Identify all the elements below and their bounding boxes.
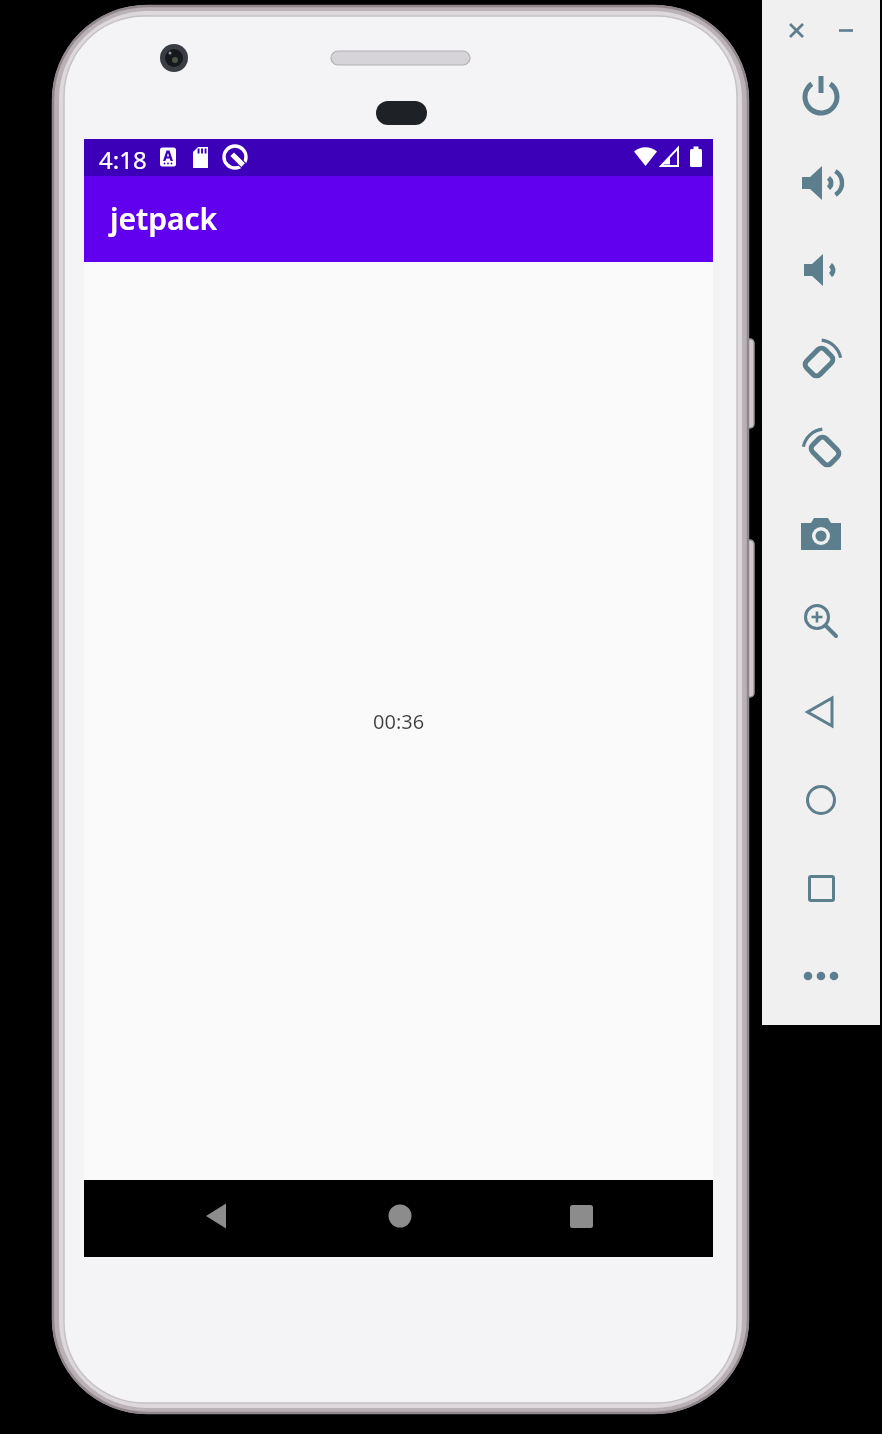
button[interactable] [799, 778, 843, 822]
staticText: jetpack [110, 198, 218, 239]
button[interactable] [799, 161, 843, 205]
button[interactable] [555, 1190, 607, 1242]
button[interactable] [799, 954, 843, 998]
button[interactable] [799, 512, 843, 556]
staticText: 00:36 [373, 708, 425, 735]
button[interactable] [190, 1190, 242, 1242]
button[interactable] [799, 866, 843, 910]
button[interactable] [799, 599, 843, 643]
button[interactable] [799, 690, 843, 734]
button[interactable] [834, 18, 858, 42]
button[interactable] [799, 336, 843, 380]
button[interactable] [799, 73, 843, 117]
button[interactable]: jetpack [84, 176, 713, 262]
button[interactable] [374, 1190, 426, 1242]
staticText: 4:18 [99, 143, 147, 176]
button[interactable] [799, 425, 843, 469]
button[interactable] [799, 248, 843, 292]
button[interactable] [784, 18, 808, 42]
